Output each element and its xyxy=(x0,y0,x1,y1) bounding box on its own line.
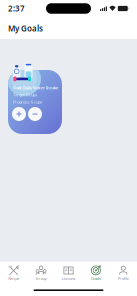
staticText: Progress: 6 cups xyxy=(13,99,42,104)
staticText: Profile xyxy=(118,276,129,281)
staticText: Goals xyxy=(91,276,101,281)
button[interactable]: Add a cup xyxy=(12,107,26,121)
button[interactable]: Lessons xyxy=(55,261,82,281)
staticText: 2:37 xyxy=(8,3,25,14)
button[interactable]: Remove a cup xyxy=(28,107,42,121)
staticText: Recipe xyxy=(8,276,19,281)
button[interactable]: Group xyxy=(27,261,55,281)
staticText: Goal: Daily Water Intake xyxy=(13,85,58,90)
staticText: Group xyxy=(36,276,47,281)
button[interactable]: Recipe xyxy=(0,261,27,281)
button[interactable]: Profile xyxy=(110,261,137,281)
staticText: Target: 8 cups xyxy=(13,92,37,97)
button[interactable]: Goals xyxy=(82,261,110,281)
button[interactable]: Goal: Daily Water Intake xyxy=(8,70,62,134)
staticText: My Goals xyxy=(8,23,43,34)
staticText: Lessons xyxy=(61,276,75,281)
